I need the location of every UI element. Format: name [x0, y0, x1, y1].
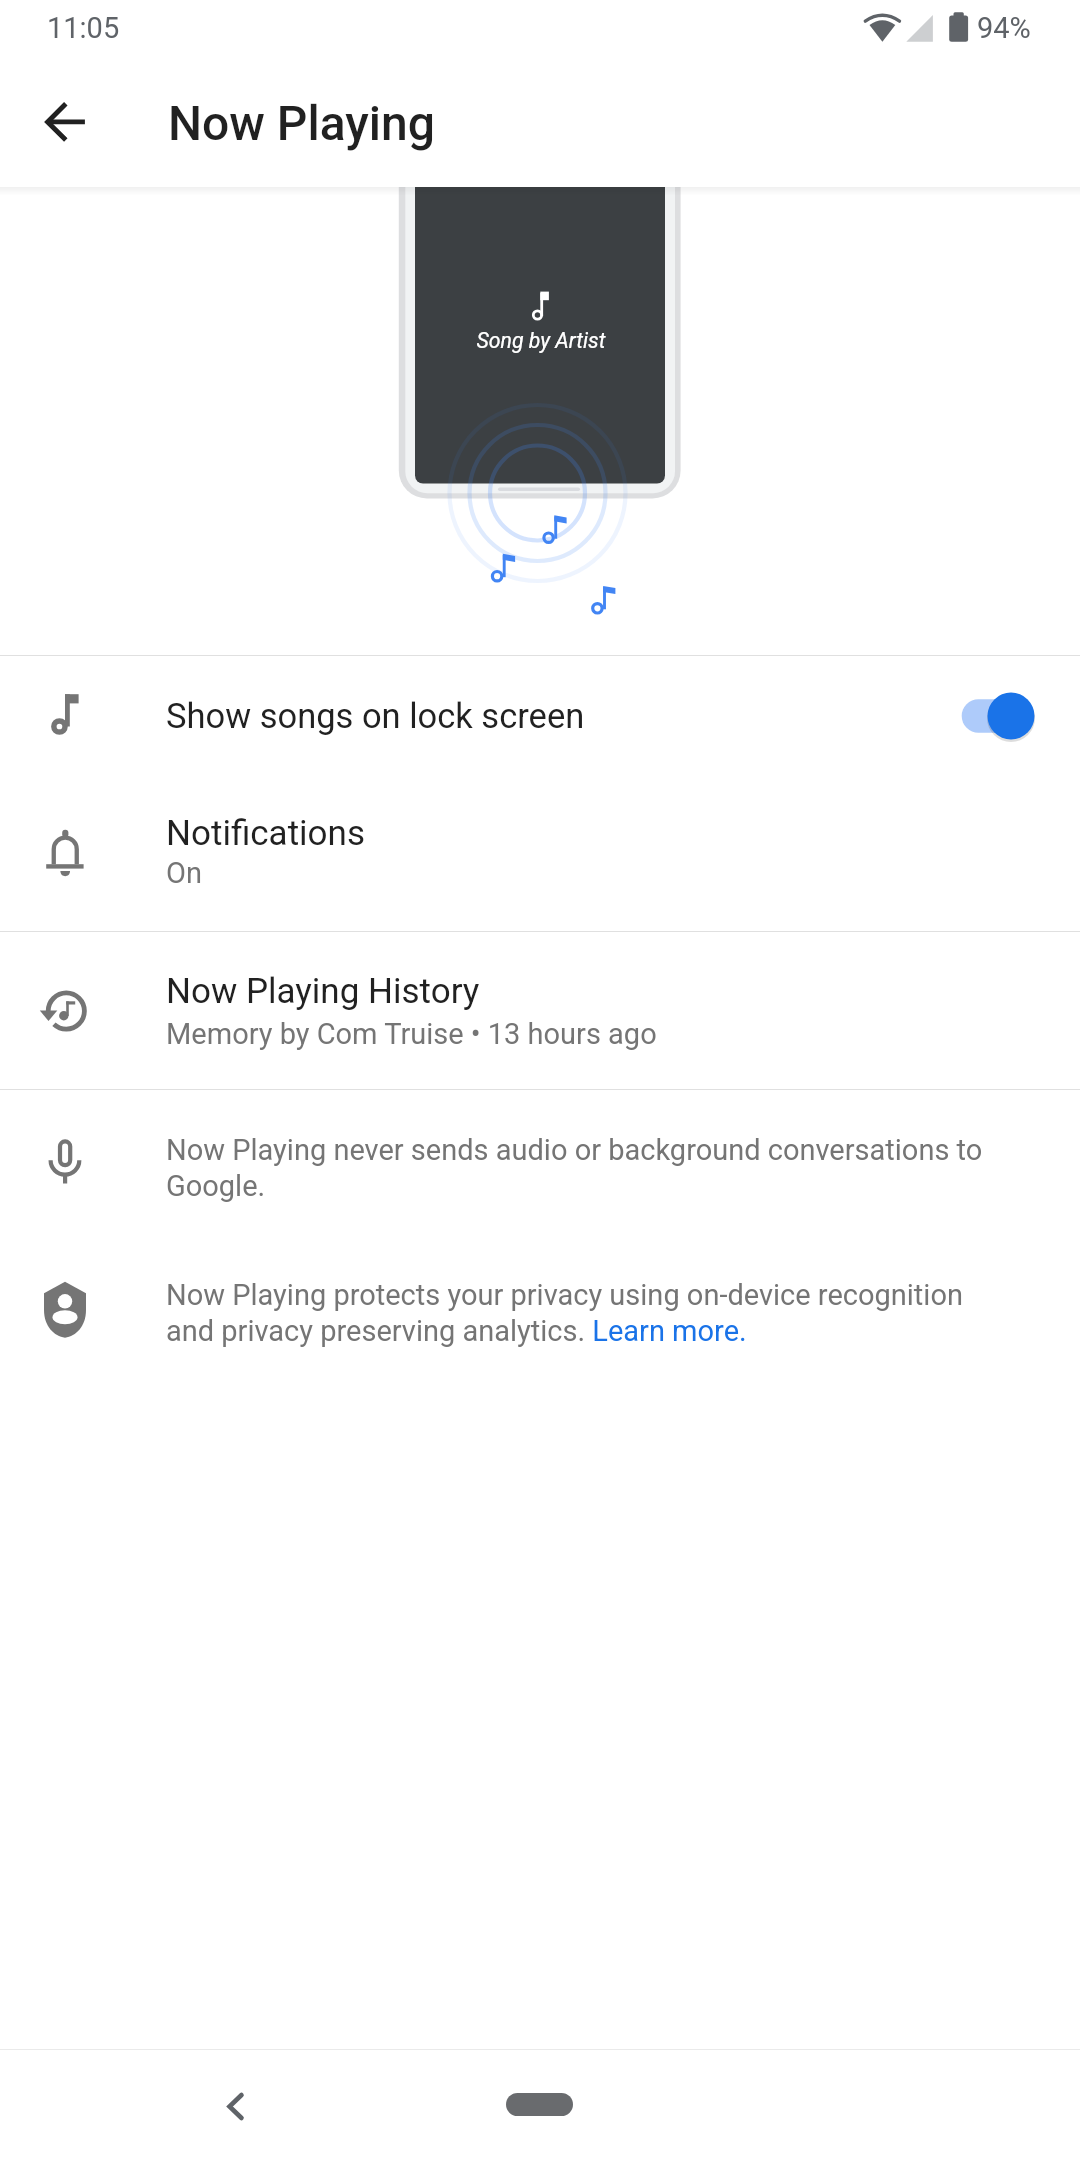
staticText: Memory by Com Truise • 13 hours ago: [166, 1017, 657, 1051]
staticText: Now Playing: [168, 95, 435, 151]
staticText: On: [166, 856, 202, 890]
staticText: 11:05: [47, 11, 120, 45]
button[interactable]: Show songs on lock screen: [0, 656, 1080, 776]
button[interactable]: Back: [18, 62, 114, 158]
button[interactable]: Notifications: [0, 776, 1080, 931]
button[interactable]: Back: [180, 2050, 292, 2160]
button[interactable]: Show songs on lock screen toggle: [960, 656, 1080, 776]
staticText: Now Playing History: [166, 971, 480, 1012]
staticText: Show songs on lock screen: [166, 696, 585, 736]
staticText: 94%: [977, 11, 1031, 45]
button[interactable]: Home: [506, 2093, 573, 2116]
button[interactable]: Now Playing History: [0, 932, 1080, 1089]
staticText: Notifications: [166, 813, 365, 854]
staticText: Song by Artist: [415, 328, 667, 353]
staticText: Now Playing protects your privacy using …: [166, 1278, 986, 1348]
staticText: Now Playing never sends audio or backgro…: [166, 1133, 1026, 1203]
